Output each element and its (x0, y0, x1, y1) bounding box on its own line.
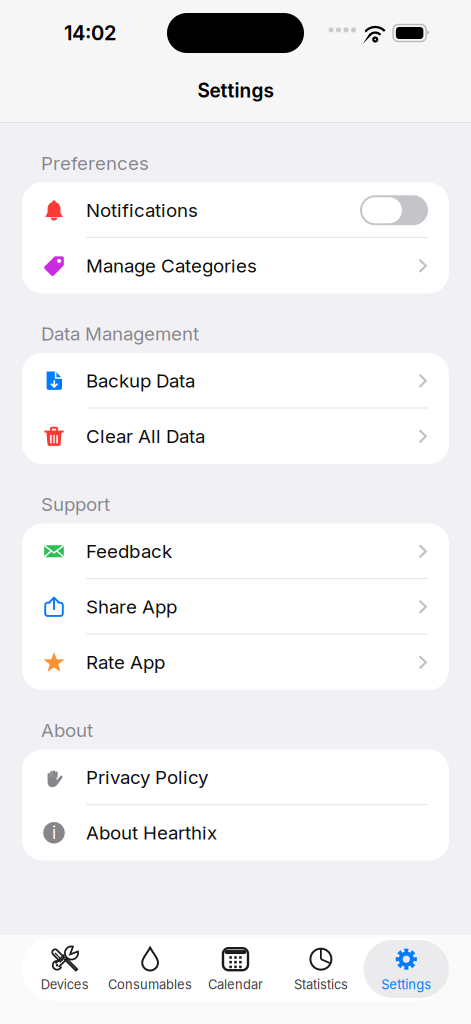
button[interactable]: Backup Data (22, 353, 449, 408)
staticText: Settings (381, 977, 431, 992)
staticText: Calendar (208, 977, 263, 992)
staticText: Support (41, 493, 110, 515)
staticText: Clear All Data (86, 425, 205, 448)
button[interactable]: Consumables (107, 940, 193, 998)
staticText: Devices (41, 977, 89, 992)
staticText: Notifications (86, 199, 198, 222)
button[interactable]: Calendar (193, 940, 278, 998)
staticText: Backup Data (86, 369, 195, 392)
staticText: Feedback (86, 540, 172, 563)
button[interactable]: Manage Categories (22, 238, 449, 293)
button[interactable]: Privacy Policy (22, 749, 449, 805)
staticText: About (41, 719, 93, 741)
staticText: Statistics (294, 977, 348, 992)
button[interactable]: Devices (22, 940, 107, 998)
staticText: Rate App (86, 651, 165, 674)
staticText: Share App (86, 595, 177, 618)
staticText: Settings (197, 79, 273, 102)
staticText: About Hearthix (86, 821, 217, 844)
staticText: Preferences (41, 152, 149, 174)
button[interactable]: Rate App (22, 634, 449, 690)
button[interactable]: Share App (22, 579, 449, 634)
button[interactable]: Feedback (22, 523, 449, 579)
button[interactable]: i (22, 805, 449, 860)
staticText: Data Management (41, 322, 199, 345)
staticText: Manage Categories (86, 254, 257, 277)
staticText: i (52, 822, 56, 843)
button[interactable]: Notifications (22, 182, 449, 238)
button[interactable]: Settings (364, 940, 449, 998)
staticText: Consumables (108, 977, 192, 992)
staticText: 14:02 (64, 21, 116, 45)
button[interactable]: Clear All Data (22, 408, 449, 464)
staticText: Privacy Policy (86, 766, 208, 789)
button[interactable]: Statistics (278, 940, 364, 998)
